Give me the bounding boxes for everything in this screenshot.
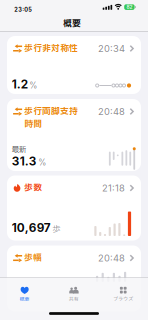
staticText: 時間 (24, 117, 42, 130)
staticText: 歩 (52, 223, 60, 236)
staticText: 23:05 (14, 6, 32, 13)
staticText: 概要 (20, 296, 30, 303)
staticText: 歩行両脚支持 (24, 105, 78, 118)
staticText: 21:18 (102, 182, 125, 194)
staticText: 共有 (69, 296, 79, 303)
button[interactable]: 歩幅 (7, 245, 141, 311)
staticText: % (29, 81, 37, 91)
staticText: ブラウズ (113, 295, 133, 303)
staticText: 歩幅 (24, 251, 42, 264)
staticText: 82 (126, 4, 132, 10)
staticText: 1.2 (12, 77, 28, 91)
button[interactable]: ブラウズ (99, 287, 148, 311)
staticText: 31.3 (12, 154, 37, 168)
staticText: 10,697 (12, 221, 51, 235)
button[interactable]: 概要 (0, 287, 49, 311)
staticText: 概要 (63, 17, 81, 30)
staticText: 20:48 (98, 252, 125, 264)
button[interactable]: 歩行両脚支持 (7, 99, 141, 171)
staticText: 最新 (12, 144, 26, 155)
button[interactable]: 歩行非対称性 (7, 36, 141, 94)
button[interactable]: 共有 (49, 287, 99, 311)
staticText: 歩数 (24, 181, 42, 194)
staticText: 20:48 (98, 106, 125, 117)
staticText: 歩行非対称性 (24, 42, 78, 55)
staticText: % (38, 158, 46, 168)
button[interactable]: 歩数 (7, 175, 141, 240)
staticText: 20:34 (98, 43, 125, 54)
